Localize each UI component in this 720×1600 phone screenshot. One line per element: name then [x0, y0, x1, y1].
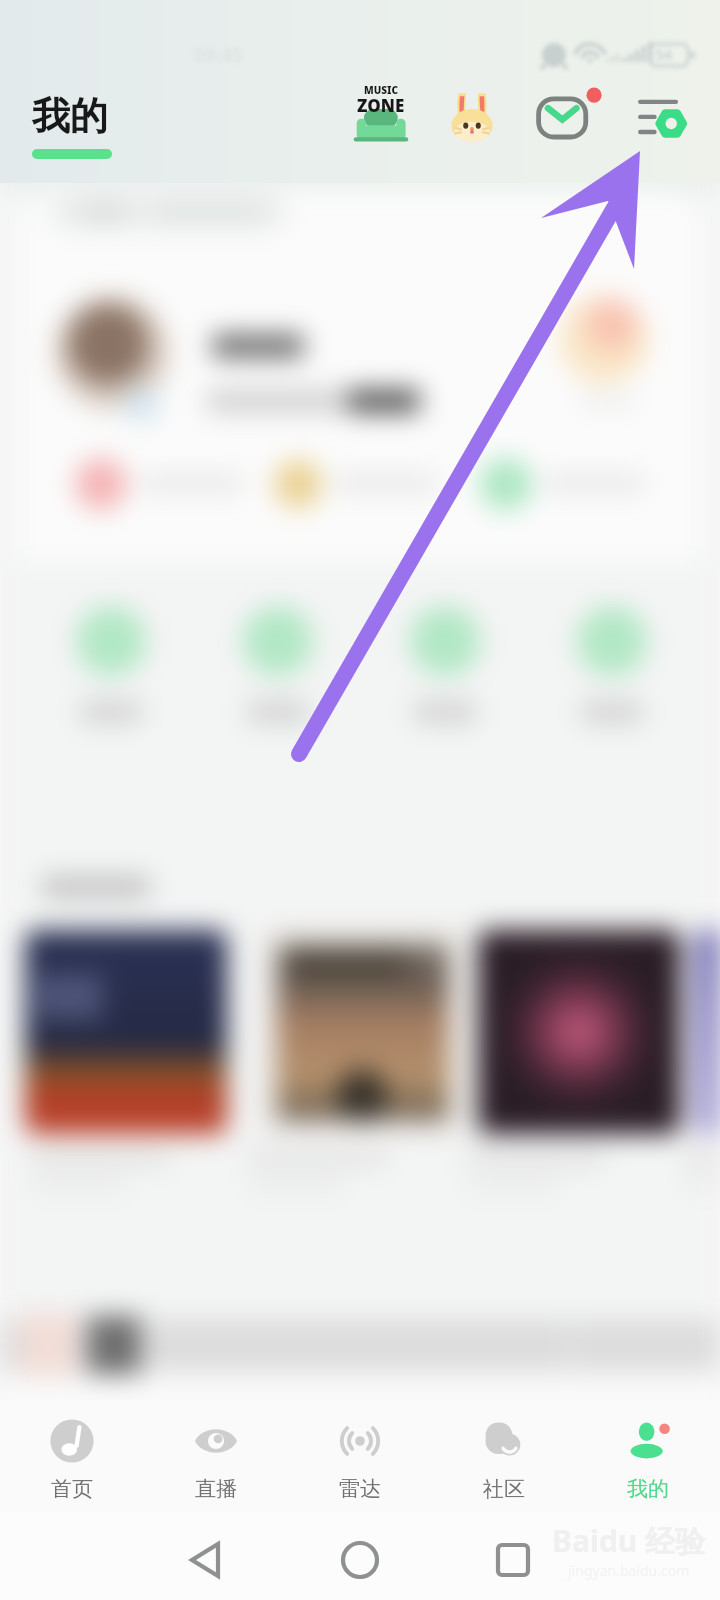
staticText: 54 — [655, 44, 673, 64]
staticText: ZONE — [357, 94, 405, 117]
button[interactable]: 我的 — [576, 1418, 720, 1502]
button[interactable]: 首页 — [0, 1418, 144, 1502]
button[interactable]: 雷达 — [288, 1418, 432, 1502]
button[interactable]: Messages — [526, 88, 598, 150]
button[interactable]: Music Zone — [351, 86, 411, 146]
staticText: jingyan.baidu.com — [568, 1561, 690, 1580]
button[interactable]: Profile avatar — [450, 90, 494, 143]
button[interactable]: 社区 — [432, 1418, 576, 1502]
staticText: 我的 — [627, 1476, 669, 1502]
button[interactable]: Settings menu — [630, 93, 692, 151]
staticText: 社区 — [483, 1476, 525, 1502]
staticText: Baidu 经验 — [552, 1520, 706, 1561]
staticText: 我的 — [32, 92, 108, 140]
staticText: 首页 — [51, 1476, 93, 1502]
staticText: 雷达 — [339, 1476, 381, 1502]
staticText: 直播 — [195, 1476, 237, 1502]
button[interactable]: 直播 — [144, 1418, 288, 1502]
staticText: MUSIC — [364, 83, 398, 97]
